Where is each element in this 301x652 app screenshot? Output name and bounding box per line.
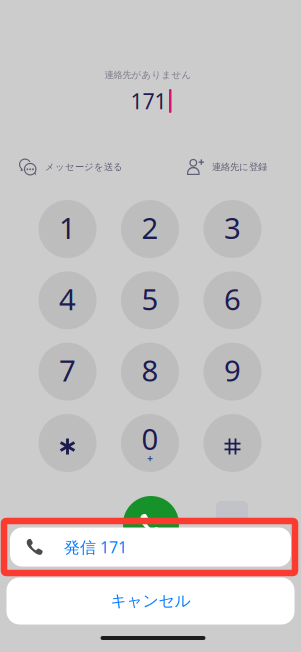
staticText: 連絡先がありません: [104, 69, 191, 81]
staticText: 2: [141, 208, 158, 247]
staticText: 7: [59, 351, 76, 390]
button[interactable]: Zero, plus: [121, 414, 179, 472]
staticText: 1: [59, 208, 76, 247]
staticText: キャンセル: [110, 591, 190, 611]
button[interactable]: 5: [121, 271, 179, 329]
button[interactable]: Star: [38, 414, 96, 472]
staticText: 9: [224, 351, 241, 390]
button[interactable]: 6: [203, 271, 261, 329]
button[interactable]: 9: [203, 343, 261, 401]
button[interactable]: Call: [123, 496, 179, 552]
staticText: メッセージを送る: [45, 161, 123, 173]
button[interactable]: 7: [38, 343, 96, 401]
button[interactable]: 1: [38, 200, 96, 258]
button[interactable]: Pound: [203, 414, 261, 472]
staticText: 0: [141, 419, 158, 458]
button[interactable]: 連絡先に登録: [187, 154, 279, 180]
staticText: +: [147, 451, 153, 465]
button[interactable]: メッセージを送る: [19, 154, 129, 180]
staticText: 5: [141, 279, 158, 318]
staticText: 発信 171: [64, 536, 127, 558]
staticText: 8: [141, 351, 158, 390]
button[interactable]: 3: [203, 200, 261, 258]
button[interactable]: 発信 171: [10, 527, 291, 566]
staticText: 171: [130, 87, 166, 115]
staticText: 4: [59, 279, 76, 318]
button[interactable]: 2: [121, 200, 179, 258]
button[interactable]: 8: [121, 343, 179, 401]
staticText: 3: [224, 208, 241, 247]
staticText: 6: [224, 279, 241, 318]
staticText: 連絡先に登録: [212, 161, 267, 173]
button[interactable]: 4: [38, 271, 96, 329]
button[interactable]: キャンセル: [6, 577, 294, 624]
